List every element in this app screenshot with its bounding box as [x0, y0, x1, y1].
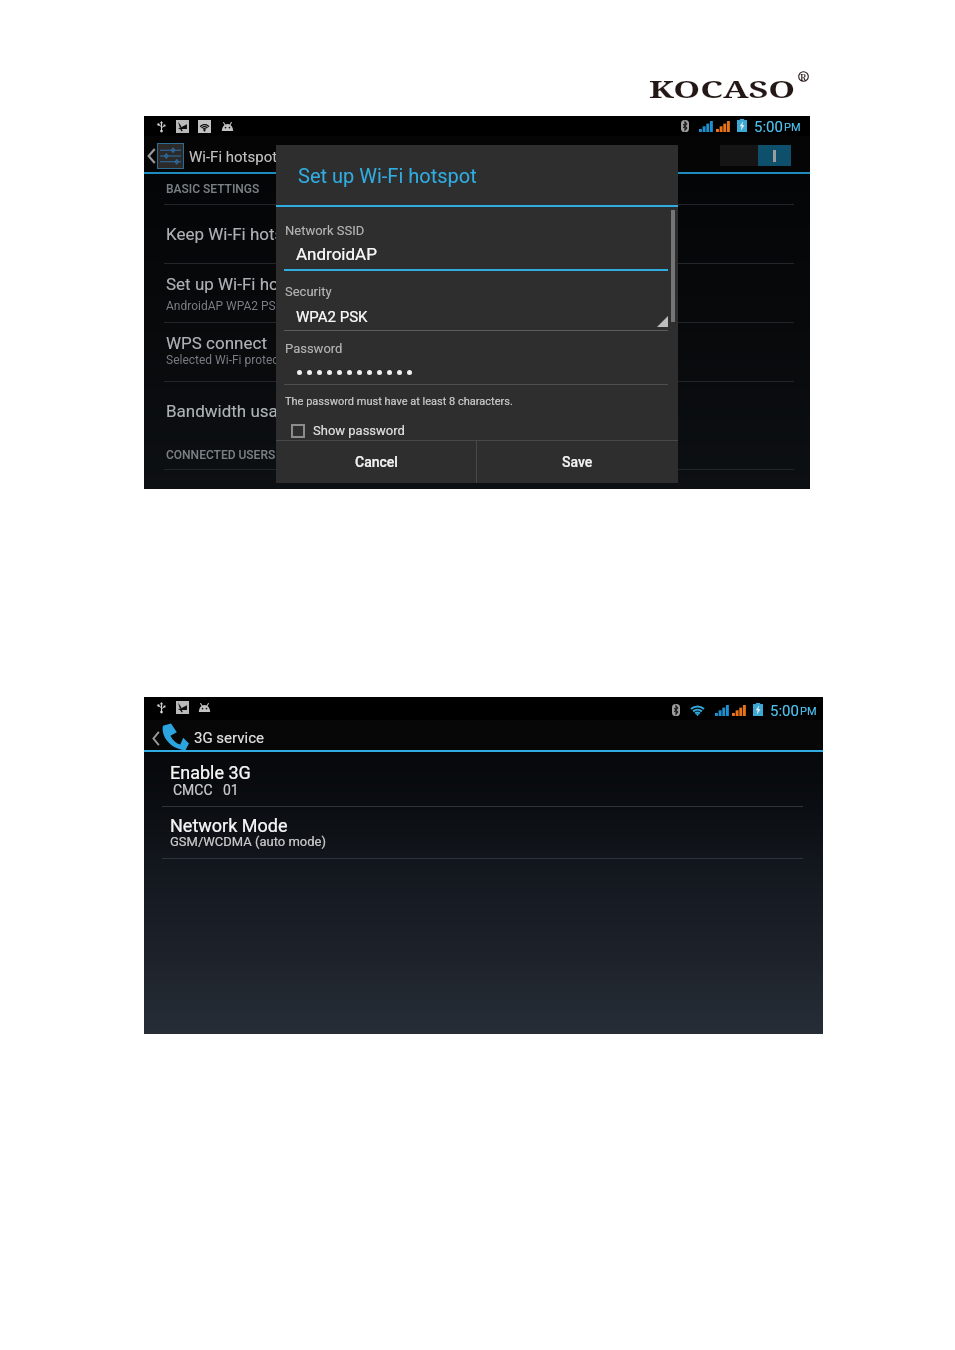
button[interactable]: Settings: [157, 143, 184, 169]
staticText: Password: [285, 341, 343, 356]
button[interactable]: Back: [147, 148, 156, 164]
button[interactable]: Cancel: [276, 441, 476, 483]
staticText: Selected Wi-Fi protected setup: [166, 353, 329, 367]
staticText: Cancel: [355, 454, 398, 470]
staticText: BASIC SETTINGS: [166, 182, 260, 196]
staticText: GSM/WCDMA (auto mode): [170, 834, 326, 849]
staticText: 3G service: [194, 729, 264, 747]
staticText: Network SSID: [285, 223, 365, 238]
staticText: Network Mode: [170, 815, 288, 836]
staticText: Set up Wi-Fi hotspot: [298, 164, 477, 187]
staticText: Save: [562, 454, 593, 470]
staticText: WPA2 PSK: [296, 308, 368, 326]
staticText: CONNECTED USERS: [166, 448, 276, 462]
staticText: Wi-Fi hotspot: [189, 148, 278, 166]
staticText: AndroidAP: [296, 244, 377, 264]
staticText: Set up Wi-Fi hotspot: [166, 274, 318, 294]
staticText: Keep Wi-Fi hotspot on: [166, 224, 332, 244]
staticText: KOCASO: [649, 72, 795, 105]
button[interactable]: Back: [152, 731, 160, 746]
staticText: R: [800, 71, 807, 83]
staticText: AndroidAP WPA2 PSK: [166, 299, 284, 313]
other: Phone: [160, 723, 189, 750]
staticText: The password must have at least 8 charac…: [285, 395, 513, 408]
staticText: Bandwidth usage: [166, 401, 297, 421]
staticText: PM: [800, 705, 817, 718]
staticText: Enable 3G: [170, 762, 251, 783]
staticText: PM: [784, 121, 801, 134]
staticText: 5:00: [754, 118, 783, 136]
staticText: Security: [285, 284, 332, 299]
staticText: Show password: [313, 423, 405, 438]
button[interactable]: Wi-Fi hotspot on: [720, 145, 791, 166]
staticText: 5:00: [770, 702, 799, 720]
staticText: WPS connect: [166, 333, 267, 353]
staticText: CMCC 01: [173, 782, 239, 798]
button[interactable]: Save: [477, 441, 678, 483]
